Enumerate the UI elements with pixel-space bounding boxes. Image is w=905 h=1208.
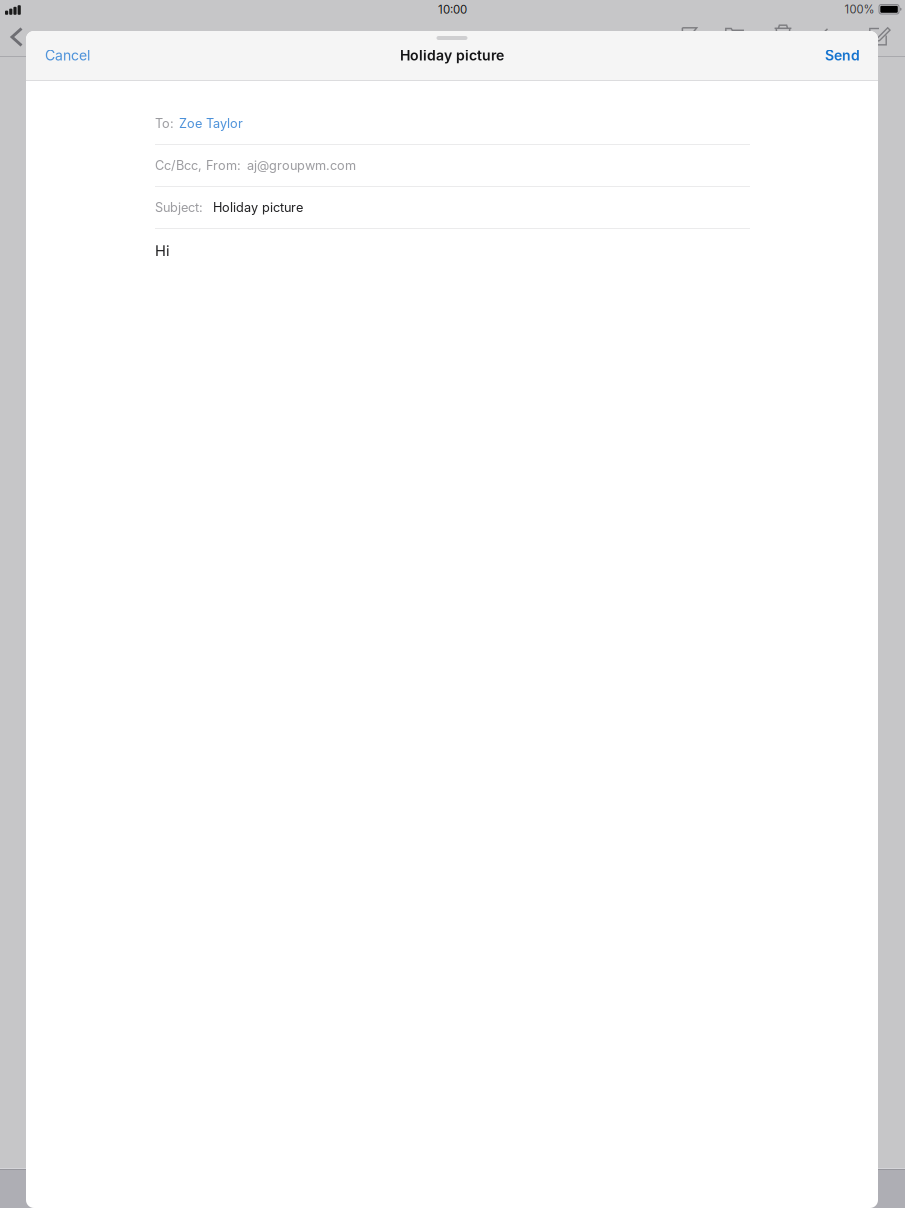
staticText: To: xyxy=(155,116,174,131)
button[interactable]: Flag xyxy=(681,26,697,47)
staticText: Subject: xyxy=(155,200,203,215)
button[interactable]: Send xyxy=(817,31,868,80)
staticText: Cancel xyxy=(45,47,90,64)
staticText: Holiday picture xyxy=(400,47,504,64)
button[interactable]: To: xyxy=(155,103,750,145)
staticText: Send xyxy=(825,47,860,64)
staticText: 10:00 xyxy=(438,3,467,16)
staticText: Zoe Taylor xyxy=(179,116,243,131)
button[interactable]: Subject: xyxy=(155,187,750,229)
staticText: Holiday picture xyxy=(213,200,303,215)
button[interactable]: Back xyxy=(10,27,23,47)
button[interactable]: Move to folder xyxy=(725,25,744,43)
button[interactable]: Delete xyxy=(774,20,792,42)
button[interactable]: Cc/Bcc, From: xyxy=(155,145,750,187)
button[interactable]: Compose xyxy=(869,27,891,46)
staticText: 100% xyxy=(844,3,874,16)
staticText: Hi xyxy=(155,242,170,260)
button[interactable]: Reply xyxy=(819,28,839,49)
button[interactable]: Cancel xyxy=(37,31,98,80)
staticText: Cc/Bcc, From: xyxy=(155,158,241,173)
staticText: aj@groupwm.com xyxy=(247,158,356,173)
